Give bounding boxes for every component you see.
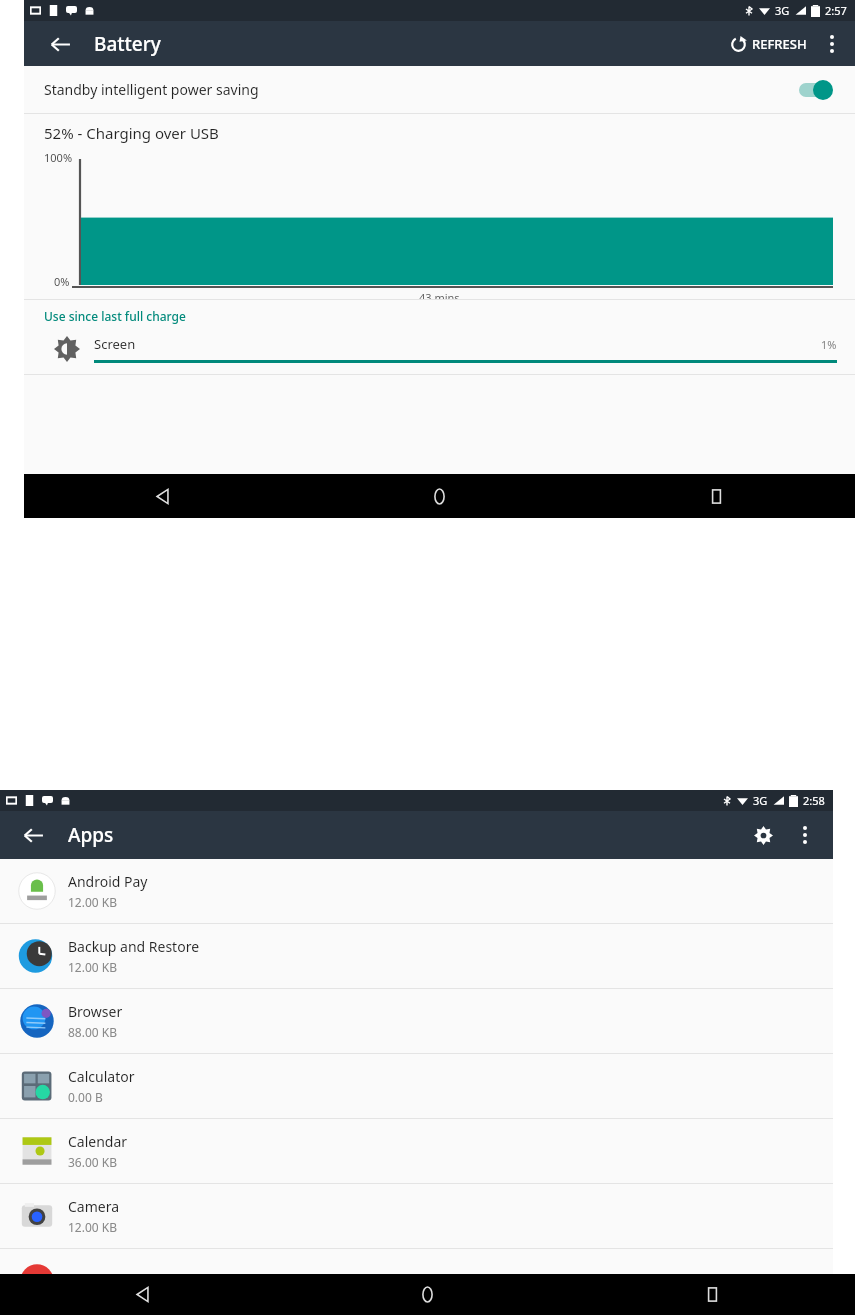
staticText: 52% - Charging over USB: [44, 123, 219, 143]
staticText: 43 mins: [419, 290, 460, 299]
button[interactable]: More options: [787, 817, 823, 853]
button[interactable]: Back: [44, 28, 76, 60]
staticText: 36.00 KB: [68, 1154, 118, 1170]
staticText: 2:58: [803, 793, 825, 808]
staticText: 3G: [753, 793, 768, 808]
staticText: 88.00 KB: [68, 1024, 118, 1040]
button[interactable]: Home: [301, 474, 578, 518]
staticText: Apps: [68, 822, 114, 848]
button[interactable]: Browser: [0, 989, 833, 1053]
staticText: Standby intelligent power saving: [44, 80, 259, 99]
staticText: 0%: [54, 274, 70, 289]
staticText: Battery: [94, 31, 161, 57]
button[interactable]: REFRESH: [722, 29, 815, 59]
staticText: REFRESH: [752, 35, 807, 53]
staticText: Browser: [68, 1002, 123, 1021]
staticText: Chrome: [68, 1272, 121, 1291]
staticText: Calendar: [68, 1132, 128, 1151]
button[interactable]: Backup and Restore: [0, 924, 833, 988]
button[interactable]: Chrome: [0, 1249, 833, 1313]
button[interactable]: Screen: [24, 324, 855, 374]
staticText: 12.00 KB: [68, 959, 118, 975]
staticText: Calculator: [68, 1067, 135, 1086]
staticText: 12.00 KB: [68, 894, 118, 910]
button[interactable]: Camera: [0, 1184, 833, 1248]
staticText: 0.00 B: [68, 1089, 103, 1105]
button[interactable]: Calculator: [0, 1054, 833, 1118]
staticText: 2:57: [825, 3, 847, 18]
button[interactable]: Recents: [578, 474, 855, 518]
button[interactable]: Calendar: [0, 1119, 833, 1183]
button[interactable]: Recents: [570, 1274, 855, 1315]
button[interactable]: Settings: [745, 817, 781, 853]
staticText: 3G: [775, 3, 790, 18]
button[interactable]: Android Pay: [0, 859, 833, 923]
button[interactable]: Back: [16, 818, 50, 852]
staticText: Screen: [94, 335, 136, 353]
button[interactable]: Standby intelligent power saving: [24, 66, 855, 113]
staticText: Use since last full charge: [44, 308, 186, 324]
staticText: 1%: [821, 337, 837, 352]
button[interactable]: Back: [24, 474, 301, 518]
staticText: 100%: [44, 150, 73, 165]
staticText: Camera: [68, 1197, 120, 1216]
staticText: Backup and Restore: [68, 937, 200, 956]
staticText: Android Pay: [68, 872, 148, 891]
button[interactable]: More options: [815, 27, 849, 61]
staticText: 12.00 KB: [68, 1219, 118, 1235]
button[interactable]: Back: [0, 1274, 285, 1315]
button[interactable]: Home: [285, 1274, 570, 1315]
